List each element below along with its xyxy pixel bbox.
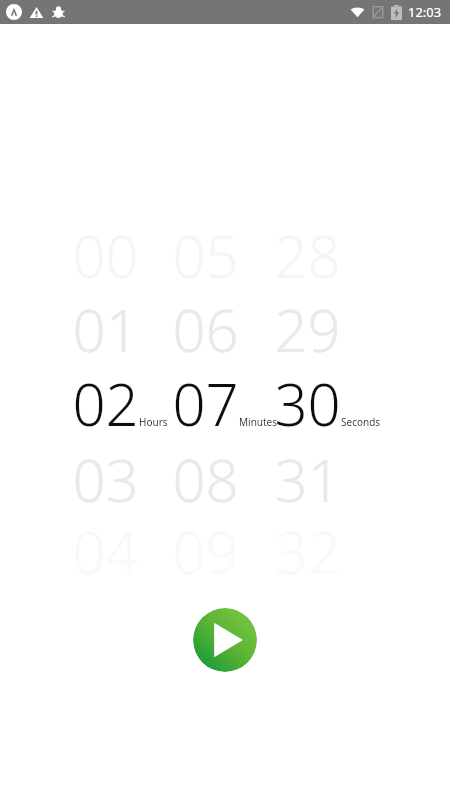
staticText: Seconds [341, 415, 381, 429]
staticText: 05 [172, 216, 239, 295]
button[interactable]: 06 [172, 290, 239, 369]
staticText: 29 [274, 290, 341, 369]
staticText: 02 [72, 364, 139, 443]
button[interactable]: 00 [72, 216, 139, 295]
staticText: Hours [139, 415, 168, 429]
staticText: 28 [274, 216, 341, 295]
staticText: 08 [172, 440, 239, 519]
staticText: 01 [72, 290, 139, 369]
staticText: 12:03 [408, 3, 442, 21]
staticText: 00 [72, 216, 139, 295]
button[interactable]: 07 [172, 364, 278, 443]
button[interactable]: 05 [172, 216, 239, 295]
staticText: 30 [274, 364, 341, 443]
button[interactable]: Start timer [193, 608, 257, 672]
button[interactable]: 29 [274, 290, 341, 369]
button[interactable]: 02 [72, 364, 168, 443]
staticText: 07 [172, 364, 239, 443]
staticText: 31 [274, 440, 341, 519]
button[interactable]: 03 [72, 440, 139, 519]
staticText: Minutes [239, 415, 278, 429]
button[interactable]: 28 [274, 216, 341, 295]
button[interactable]: 08 [172, 440, 239, 519]
staticText: 06 [172, 290, 239, 369]
staticText: 03 [72, 440, 139, 519]
button[interactable]: 01 [72, 290, 139, 369]
button[interactable]: 31 [274, 440, 341, 519]
button[interactable]: 30 [274, 364, 381, 443]
